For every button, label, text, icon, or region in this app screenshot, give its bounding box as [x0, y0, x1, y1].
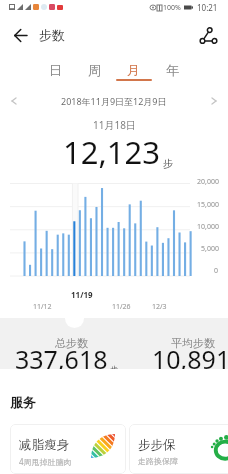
staticText: 服务	[10, 394, 36, 410]
button[interactable]: 步步保	[129, 424, 228, 474]
staticText: 10:21	[197, 2, 218, 13]
button[interactable]: 周	[75, 57, 114, 82]
staticText: 0	[214, 266, 219, 276]
button[interactable]: 年	[153, 57, 192, 82]
button[interactable]: Previous period	[5, 92, 23, 110]
staticText: 11/19	[71, 289, 93, 300]
staticText: 平均步数	[171, 336, 215, 350]
staticText: 4周甩掉肚腩肉	[19, 456, 72, 467]
staticText: 周	[88, 62, 101, 78]
staticText: 11月18日	[93, 118, 136, 132]
staticText: 10,891	[152, 342, 228, 376]
staticText: 2018年11月9日至12月9日	[61, 95, 167, 107]
button[interactable]: 日	[36, 57, 75, 82]
staticText: 10,000	[197, 222, 219, 232]
staticText: 减脂瘦身	[19, 437, 69, 453]
staticText: 步步保	[138, 437, 176, 453]
staticText: 5,000	[201, 244, 219, 254]
staticText: 总步数	[55, 336, 88, 350]
staticText: 100%	[163, 3, 181, 13]
button[interactable]: Share	[195, 22, 221, 48]
staticText: 月	[127, 62, 140, 78]
staticText: 12,123	[63, 131, 160, 173]
staticText: 日	[49, 62, 62, 78]
button[interactable]: 总步数	[0, 318, 137, 369]
staticText: 15,000	[197, 200, 219, 210]
button[interactable]: 月	[114, 57, 153, 82]
button[interactable]: 平均步数	[137, 318, 228, 369]
staticText: 走路换保障	[138, 456, 178, 466]
button[interactable]: 减脂瘦身	[10, 424, 126, 474]
button[interactable]: Next period	[205, 92, 223, 110]
staticText: 11/26	[112, 302, 131, 312]
staticText: 337,618	[15, 342, 108, 376]
staticText: 步数	[39, 27, 65, 43]
staticText: 年	[166, 62, 179, 78]
staticText: 步	[110, 364, 118, 374]
staticText: 步	[163, 157, 173, 170]
staticText: 12/3	[152, 302, 167, 312]
button[interactable]: Back	[7, 22, 33, 48]
staticText: 20,000	[197, 177, 219, 187]
staticText: 11/12	[33, 302, 52, 312]
